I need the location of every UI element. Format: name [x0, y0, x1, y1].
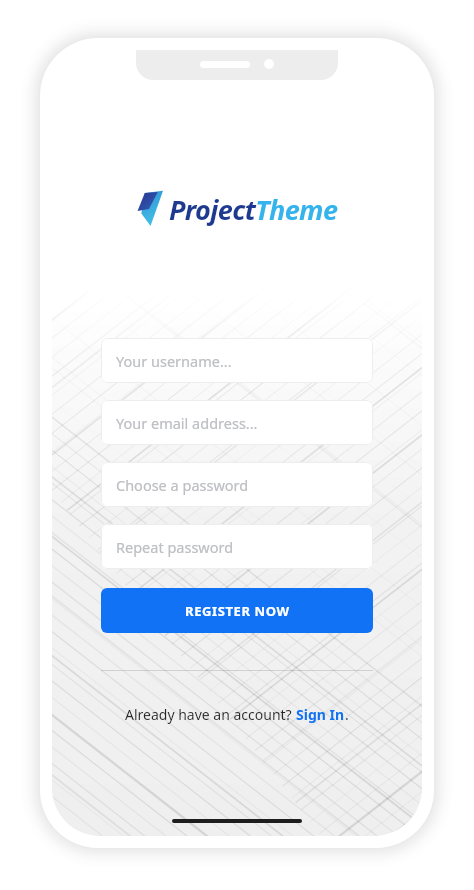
staticText: Choose a password — [116, 475, 249, 495]
button[interactable]: Your email address... — [101, 400, 373, 445]
button[interactable]: Repeat password — [101, 524, 373, 569]
staticText: Already have an account? — [125, 705, 296, 724]
staticText: . — [345, 705, 349, 724]
staticText: ProjectTheme — [169, 191, 338, 228]
button[interactable]: Choose a password — [101, 462, 373, 507]
staticText: Sign In — [296, 705, 345, 724]
staticText: Your username... — [116, 351, 232, 371]
staticText: Your email address... — [116, 413, 258, 433]
other: ProjectTheme logo — [137, 190, 163, 228]
staticText: REGISTER NOW — [185, 602, 290, 620]
button[interactable]: Your username... — [101, 338, 373, 383]
button[interactable]: REGISTER NOW — [101, 588, 373, 633]
button[interactable]: Sign In — [296, 705, 345, 724]
staticText: Repeat password — [116, 537, 234, 557]
